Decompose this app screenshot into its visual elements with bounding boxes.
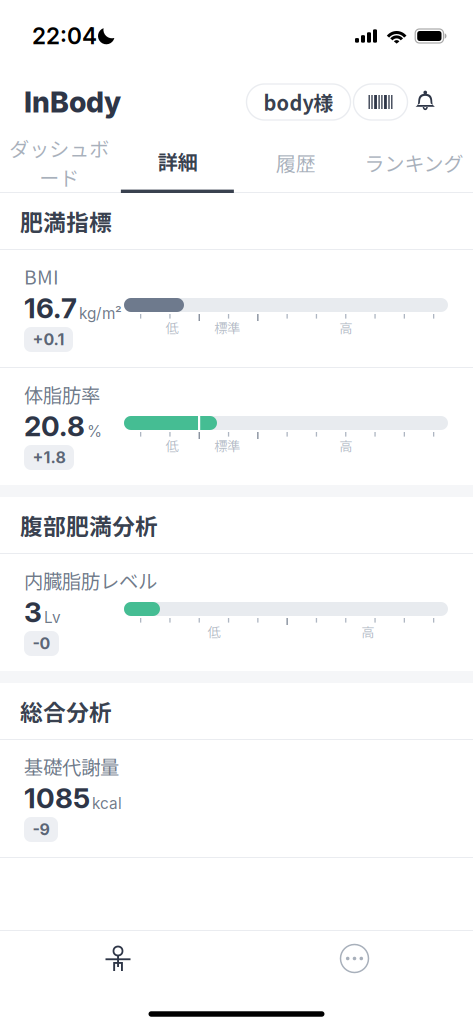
button[interactable]: Notifications	[409, 84, 441, 120]
staticText: 高	[339, 318, 352, 337]
staticText: 20.8	[24, 409, 85, 443]
staticText: +1.8	[32, 448, 65, 467]
staticText: InBody	[24, 85, 121, 119]
staticText: Lv	[44, 608, 61, 627]
staticText: 履歴	[276, 148, 316, 177]
staticText: 22:04	[32, 22, 97, 50]
staticText: -9	[32, 820, 49, 839]
staticText: kcal	[92, 794, 122, 813]
button[interactable]: 履歴	[236, 132, 355, 193]
staticText: -0	[32, 634, 50, 653]
staticText: ード	[39, 162, 79, 191]
staticText: ランキング	[364, 148, 463, 177]
staticText: 低	[165, 318, 178, 337]
staticText: body様	[263, 87, 333, 116]
staticText: 肥満指標	[20, 205, 112, 237]
staticText: %	[87, 422, 102, 441]
button[interactable]: Body	[0, 931, 236, 986]
staticText: 総合分析	[20, 695, 112, 727]
staticText: 詳細	[157, 146, 197, 175]
staticText: BMI	[24, 262, 59, 290]
staticText: 高	[361, 622, 374, 641]
staticText: 標準	[214, 436, 240, 455]
staticText: 3	[24, 595, 42, 629]
button[interactable]: 詳細	[118, 132, 236, 193]
staticText: 基礎代謝量	[24, 752, 119, 780]
staticText: 内臓脂肪レベル	[24, 566, 157, 594]
staticText: 高	[339, 436, 352, 455]
staticText	[350, 96, 353, 108]
staticText: +0.1	[32, 330, 64, 349]
staticText: kg/m²	[79, 304, 122, 323]
staticText: 低	[207, 622, 220, 641]
button[interactable]: body様	[246, 84, 350, 120]
button[interactable]: Barcode	[353, 84, 407, 120]
staticText: 腹部肥満分析	[20, 509, 158, 541]
staticText: 低	[165, 436, 178, 455]
button[interactable]: ランキング	[355, 132, 473, 193]
staticText: 16.7	[24, 291, 77, 325]
staticText: 1085	[24, 781, 90, 815]
staticText: 体脂肪率	[24, 380, 100, 408]
button[interactable]: More	[236, 931, 473, 986]
staticText: 標準	[214, 318, 240, 337]
staticText: ダッシュボ	[9, 133, 109, 162]
button[interactable]: ダッシュボ	[0, 132, 118, 193]
